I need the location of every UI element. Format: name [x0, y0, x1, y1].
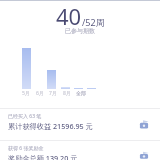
- staticText: 累计获得收益 21596.95 元: [8, 121, 93, 131]
- staticText: 获得 6 张奖励金: [8, 145, 44, 152]
- staticText: 已经买入 63 笔: [8, 113, 42, 120]
- staticText: 全部: [76, 90, 86, 96]
- staticText: 6月: [36, 90, 44, 97]
- staticText: 5月: [22, 90, 30, 97]
- staticText: 8月: [63, 90, 71, 97]
- staticText: 奖励金总额 139.20 元: [8, 153, 78, 160]
- other: Total earnings: [138, 118, 150, 130]
- button[interactable]: 已经买入 63 笔: [0, 109, 160, 140]
- staticText: /52周: [82, 16, 105, 28]
- other: Reward coupons: [138, 150, 150, 160]
- button[interactable]: 获得 6 张奖励金: [0, 141, 160, 160]
- staticText: 7月: [49, 90, 57, 97]
- staticText: 40: [56, 1, 82, 31]
- staticText: 已参与期数: [65, 27, 95, 35]
